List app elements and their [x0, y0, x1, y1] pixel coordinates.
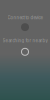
staticText: Searching for nearby	[2, 38, 47, 43]
staticText: Connect to device	[7, 15, 42, 20]
